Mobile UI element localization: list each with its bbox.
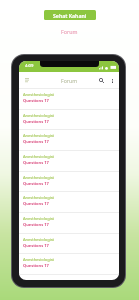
staticText: 4:09: [25, 63, 34, 69]
staticText: Questions 17: [23, 263, 49, 268]
staticText: Anesthesiologist: [23, 195, 55, 200]
staticText: Anesthesiologist: [23, 92, 55, 97]
staticText: Anesthesiologist: [23, 154, 55, 159]
staticText: Questions 17: [23, 201, 49, 206]
staticText: Anesthesiologist: [23, 216, 55, 221]
button[interactable]: Anesthesiologist: [19, 129, 119, 150]
button[interactable]: Anesthesiologist: [19, 150, 119, 171]
button[interactable]: Anesthesiologist: [19, 253, 119, 274]
staticText: Anesthesiologist: [23, 237, 55, 242]
button[interactable]: Search: [97, 76, 106, 85]
staticText: Anesthesiologist: [23, 133, 55, 138]
staticText: Questions 17: [23, 98, 49, 103]
button[interactable]: [19, 274, 119, 280]
staticText: Anesthesiologist: [23, 175, 55, 180]
staticText: Questions 17: [23, 243, 49, 248]
staticText: Questions 17: [23, 222, 49, 227]
staticText: Questions 17: [23, 181, 49, 186]
button[interactable]: Anesthesiologist: [19, 109, 119, 130]
button[interactable]: Open navigation menu: [22, 75, 32, 85]
button[interactable]: More options: [108, 76, 117, 85]
staticText: Questions 17: [23, 139, 49, 144]
staticText: Anesthesiologist: [23, 257, 55, 262]
staticText: Forum: [61, 77, 78, 84]
button[interactable]: Anesthesiologist: [19, 191, 119, 212]
button[interactable]: Sehat Kahani: [44, 10, 96, 20]
button[interactable]: Anesthesiologist: [19, 212, 119, 233]
button[interactable]: Anesthesiologist: [19, 171, 119, 192]
button[interactable]: Anesthesiologist: [19, 233, 119, 254]
staticText: Forum: [61, 28, 78, 35]
staticText: Sehat Kahani: [53, 12, 87, 19]
staticText: Questions 17: [23, 160, 49, 165]
staticText: Anesthesiologist: [23, 113, 55, 118]
staticText: Questions 17: [23, 119, 49, 124]
button[interactable]: Anesthesiologist: [19, 88, 119, 109]
